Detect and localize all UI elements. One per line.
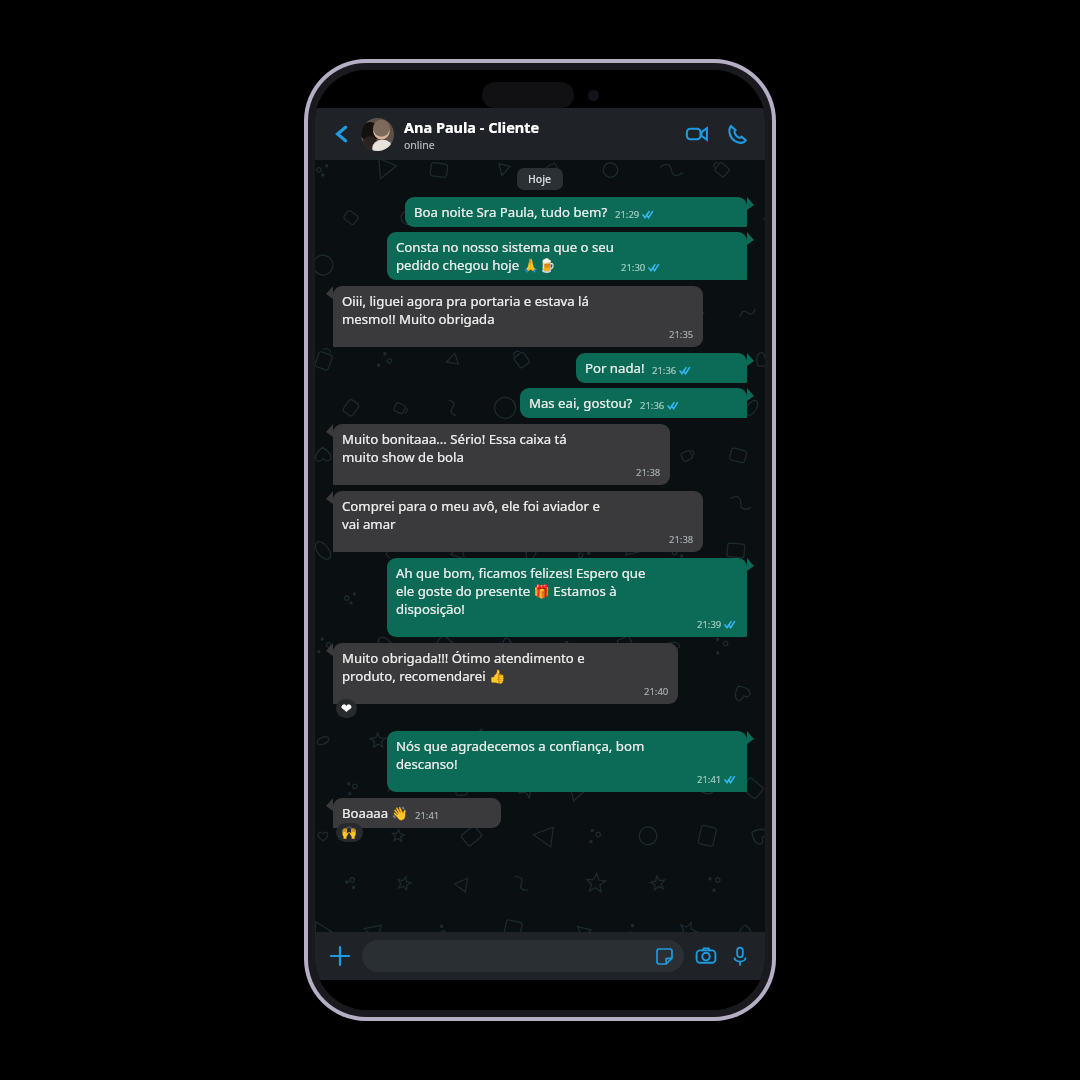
button[interactable]: Mas eai, gostou? [520, 388, 747, 418]
button[interactable]: Consta no nosso sistema que o seu [387, 232, 747, 280]
staticText: 21:36 [640, 399, 665, 412]
staticText: descanso! [396, 755, 458, 773]
staticText: Boaaaa 👋 [342, 804, 408, 822]
staticText: Nós que agradecemos a confiança, bom [396, 737, 645, 755]
button[interactable]: Ah que bom, ficamos felizes! Espero que [387, 558, 747, 637]
staticText: pedido chegou hoje 🙏🍺 [396, 256, 556, 274]
staticText: ele goste do presente 🎁 Estamos à [396, 582, 617, 600]
other: Stickers [652, 944, 676, 968]
staticText: 21:38 [669, 533, 694, 546]
staticText: mesmo!! Muito obrigada [342, 310, 495, 328]
button[interactable]: 🙌 [341, 825, 358, 840]
button[interactable]: Voice call [719, 116, 755, 152]
staticText: 21:41 [415, 809, 440, 822]
staticText: Consta no nosso sistema que o seu [396, 238, 614, 256]
staticText: Comprei para o meu avô, ele foi aviador … [342, 497, 600, 515]
staticText: vai amar [342, 515, 396, 533]
button[interactable]: ❤️ [341, 701, 352, 716]
button[interactable]: Muito bonitaaa... Sério! Essa caixa tá [333, 424, 670, 485]
button[interactable]: Oiii, liguei agora pra portaria e estava… [333, 286, 703, 347]
staticText: 21:38 [636, 466, 661, 479]
button[interactable]: Ana Paula - Cliente [361, 117, 679, 152]
button[interactable]: Por nada! [576, 353, 747, 383]
button[interactable]: Attach [324, 940, 356, 972]
staticText: produto, recomendarei 👍 [342, 667, 506, 685]
staticText: Oiii, liguei agora pra portaria e estava… [342, 292, 589, 310]
staticText: 21:30 [621, 261, 646, 274]
staticText: Mas eai, gostou? [529, 394, 633, 412]
staticText: Por nada! [585, 359, 645, 377]
staticText: 21:29 [615, 208, 640, 221]
button[interactable]: Muito obrigada!!! Ótimo atendimento e [333, 643, 678, 704]
button[interactable]: Stickers [362, 940, 684, 972]
staticText: 21:41 [697, 773, 722, 786]
button[interactable]: Comprei para o meu avô, ele foi aviador … [333, 491, 703, 552]
button[interactable]: Boaaaa 👋 [333, 798, 501, 828]
button[interactable]: Camera [690, 940, 722, 972]
staticText: Hoje [528, 172, 552, 186]
button[interactable]: Video call [679, 116, 715, 152]
staticText: 21:40 [644, 685, 669, 698]
button[interactable]: Boa noite Sra Paula, tudo bem? [405, 197, 747, 227]
staticText: Muito obrigada!!! Ótimo atendimento e [342, 649, 585, 667]
staticText: Muito bonitaaa... Sério! Essa caixa tá [342, 430, 567, 448]
staticText: Ah que bom, ficamos felizes! Espero que [396, 564, 646, 582]
staticText: disposição! [396, 600, 465, 618]
button[interactable]: Voice message [724, 940, 756, 972]
staticText: muito show de bola [342, 448, 464, 466]
staticText: ❤️ [341, 701, 352, 716]
staticText: 🙌 [341, 825, 358, 840]
staticText: 21:39 [697, 618, 722, 631]
button[interactable]: Back [325, 117, 359, 151]
staticText: 21:36 [652, 364, 677, 377]
staticText: 21:35 [669, 328, 694, 341]
button[interactable]: Nós que agradecemos a confiança, bom [387, 731, 747, 792]
staticText: online [404, 138, 435, 152]
staticText: Ana Paula - Cliente [404, 117, 540, 137]
staticText: Boa noite Sra Paula, tudo bem? [414, 203, 608, 221]
